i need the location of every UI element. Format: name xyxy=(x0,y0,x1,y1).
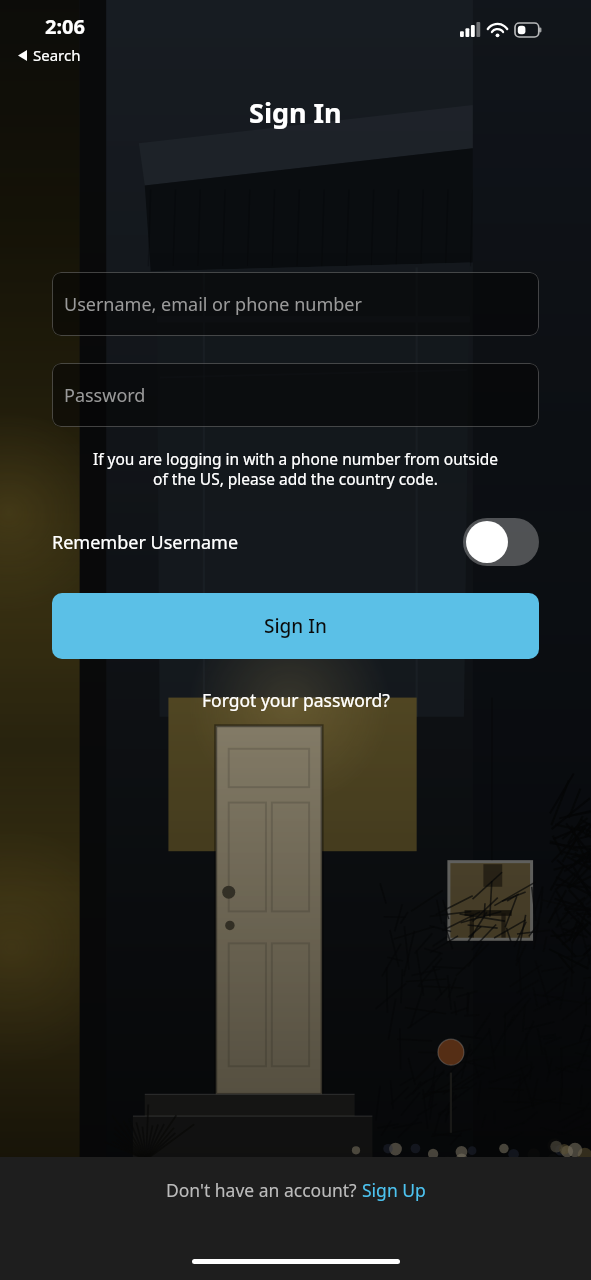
button[interactable]: Remember Username toggle, off xyxy=(463,518,539,566)
staticText: Sign Up xyxy=(362,1178,426,1202)
staticText: Password xyxy=(64,383,146,408)
staticText: Forgot your password? xyxy=(202,688,390,712)
button[interactable]: Username, email or phone number xyxy=(52,272,539,336)
staticText: If you are logging in with a phone numbe… xyxy=(44,448,547,490)
button[interactable]: Forgot your password? xyxy=(192,684,400,716)
button[interactable]: Sign Up xyxy=(362,1178,426,1202)
staticText: Search xyxy=(33,45,81,65)
button[interactable]: Sign In xyxy=(52,593,539,659)
staticText: 2:06 xyxy=(45,13,85,40)
staticText: Remember Username xyxy=(52,530,239,555)
button[interactable]: Search xyxy=(14,43,85,67)
staticText: Username, email or phone number xyxy=(64,292,362,317)
staticText: Don't have an account? xyxy=(166,1178,362,1202)
staticText: Sign In xyxy=(264,613,327,639)
staticText: Sign In xyxy=(249,94,342,131)
button[interactable]: Password xyxy=(52,363,539,427)
button[interactable]: Remember Username xyxy=(52,518,539,566)
